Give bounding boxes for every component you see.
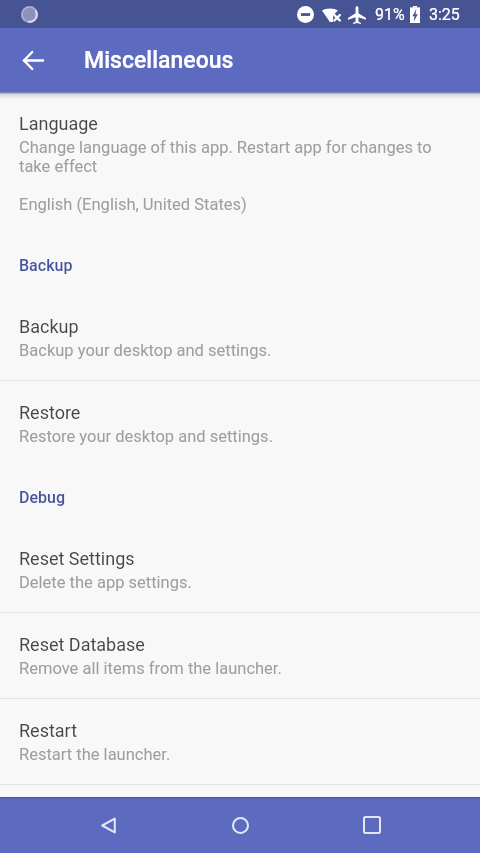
button[interactable]: Backup	[0, 295, 480, 380]
staticText: Backup your desktop and settings.	[19, 341, 272, 360]
button[interactable]: Back	[84, 801, 132, 849]
staticText: Backup	[19, 256, 73, 275]
staticText: 3:25	[429, 5, 460, 24]
staticText: Delete the app settings.	[19, 573, 192, 592]
staticText: Change language of this app. Restart app…	[19, 138, 438, 214]
staticText: Remove all items from the launcher.	[19, 659, 282, 678]
button[interactable]: Home	[216, 801, 264, 849]
staticText: Restore	[19, 402, 81, 423]
button[interactable]: Language	[0, 92, 480, 234]
button[interactable]: Recent apps	[348, 801, 396, 849]
staticText: Restore your desktop and settings.	[19, 427, 273, 446]
staticText: Restart	[19, 720, 78, 741]
staticText: Reset Database	[19, 634, 145, 655]
staticText: Miscellaneous	[84, 47, 234, 74]
button[interactable]: Navigate up	[0, 28, 66, 92]
staticText: Language	[19, 113, 98, 134]
staticText: Backup	[19, 316, 79, 337]
button[interactable]: Reset Database	[0, 613, 480, 698]
staticText: 91%	[375, 5, 405, 24]
button[interactable]: Restart	[0, 699, 480, 784]
button[interactable]: Reset Settings	[0, 527, 480, 612]
staticText: Reset Settings	[19, 548, 135, 569]
staticText: Debug	[19, 488, 66, 507]
staticText: Restart the launcher.	[19, 745, 171, 764]
button[interactable]: Restore	[0, 381, 480, 466]
